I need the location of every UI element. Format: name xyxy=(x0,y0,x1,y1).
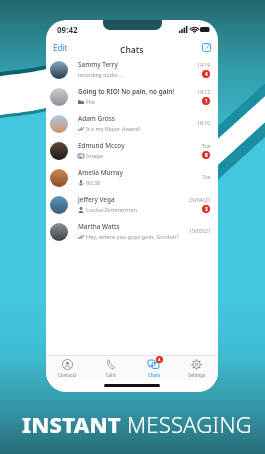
button[interactable]: Sammy Terry xyxy=(46,56,218,83)
staticText: Louisa Zimmerman xyxy=(86,206,137,214)
button[interactable]: Adam Gross xyxy=(46,110,218,137)
staticText: 09:42 xyxy=(57,24,78,35)
staticText: Hey, where you guys goin, Gordon? xyxy=(86,233,179,241)
staticText: MESSAGING xyxy=(121,409,252,439)
staticText: Calls xyxy=(106,372,116,378)
button[interactable]: 4 xyxy=(132,356,175,380)
staticText: Adam Gross xyxy=(78,114,115,123)
button[interactable]: Jeffery Vega xyxy=(46,191,218,218)
button[interactable]: Edit xyxy=(46,38,76,56)
staticText: 19:19 xyxy=(197,61,211,68)
staticText: Amelia Murray xyxy=(78,168,123,177)
staticText: 18:10 xyxy=(197,119,211,126)
button[interactable]: Martha Watts xyxy=(46,218,218,245)
staticText: 8 xyxy=(205,152,208,158)
staticText: Tue xyxy=(202,142,211,149)
button[interactable]: Calls xyxy=(89,356,132,380)
button[interactable]: Settings xyxy=(175,356,218,380)
button[interactable]: Amelia Murray xyxy=(46,164,218,191)
staticText: Settings xyxy=(188,372,206,378)
staticText: It s my Major Award! xyxy=(86,125,141,133)
staticText: INSTANT xyxy=(22,409,121,439)
staticText: Chats xyxy=(148,372,160,378)
staticText: Tue xyxy=(202,173,211,180)
staticText: Jeffery Vega xyxy=(78,195,115,204)
staticText: Going to RIO! No pain, no gain! xyxy=(78,87,175,96)
button[interactable]: Edmund Mccoy xyxy=(46,137,218,164)
button[interactable]: New message xyxy=(194,39,218,56)
staticText: Edmund Mccoy xyxy=(78,141,125,150)
staticText: recording audio ... xyxy=(78,71,124,79)
staticText: 00:38 xyxy=(86,179,101,187)
staticText: Chats xyxy=(120,44,144,56)
staticText: Sammy Terry xyxy=(78,60,118,69)
staticText: 4 xyxy=(205,71,208,77)
staticText: 4 xyxy=(158,357,161,362)
staticText: 29/04/21 xyxy=(189,196,211,203)
staticText: 1 xyxy=(205,98,208,104)
staticText: Edit xyxy=(53,42,68,53)
staticText: Image xyxy=(86,152,103,160)
staticText: 15/03/21 xyxy=(189,227,211,234)
button[interactable]: Going to RIO! No pain, no gain! xyxy=(46,83,218,110)
staticText: 3 xyxy=(205,206,208,212)
staticText: Contacts xyxy=(58,372,77,378)
staticText: Martha Watts xyxy=(78,222,120,231)
button[interactable]: Contacts xyxy=(46,356,89,380)
staticText: File xyxy=(86,98,95,106)
staticText: 19:12 xyxy=(197,88,211,95)
